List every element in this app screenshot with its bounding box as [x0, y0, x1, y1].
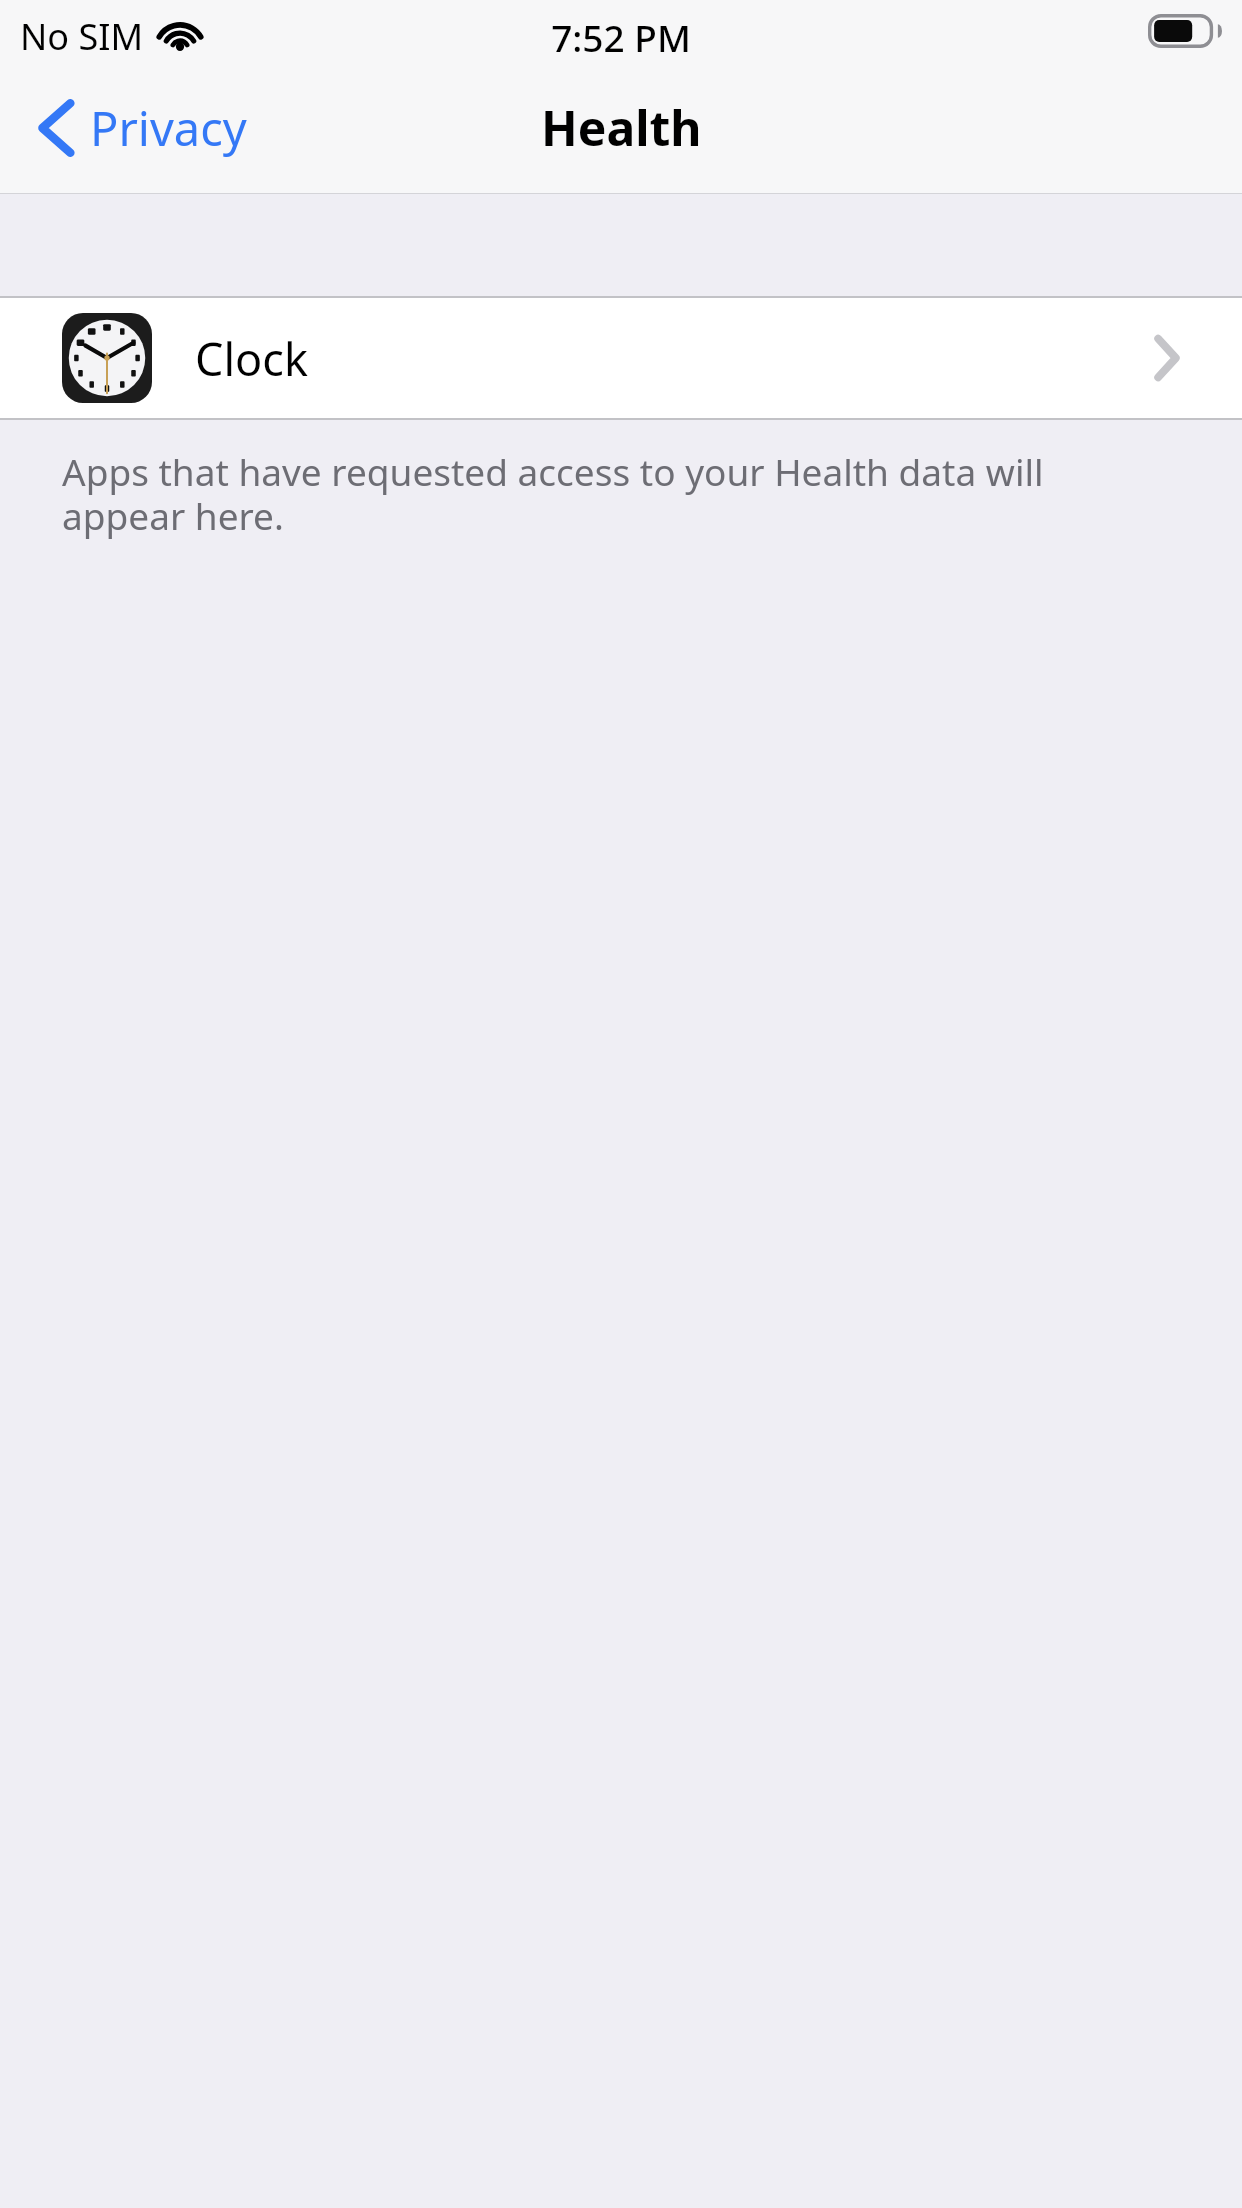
button[interactable]: Privacy: [28, 86, 255, 170]
staticText: Apps that have requested access to your …: [62, 446, 1112, 541]
staticText: Health: [541, 95, 702, 160]
staticText: Privacy: [90, 96, 247, 160]
button[interactable]: Clock: [0, 298, 1242, 418]
staticText: Clock: [195, 328, 308, 389]
staticText: No SIM: [20, 12, 144, 61]
staticText: 7:52 PM: [0, 12, 1242, 62]
